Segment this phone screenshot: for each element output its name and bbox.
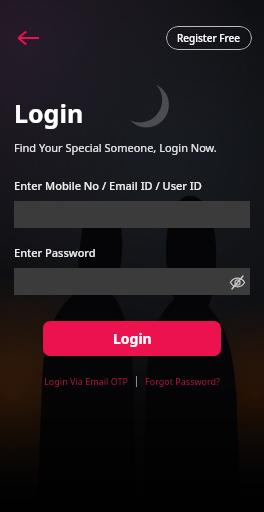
button[interactable]: Forgot Password?: [141, 373, 224, 389]
button[interactable]: Login: [43, 321, 221, 356]
staticText: Register Free: [177, 31, 241, 45]
staticText: Find Your Special Someone, Login Now.: [14, 140, 217, 155]
button[interactable]: Back: [12, 22, 44, 54]
staticText: Enter Password: [14, 245, 96, 260]
staticText: Login: [14, 96, 84, 130]
staticText: Login Via Email OTP: [44, 375, 128, 387]
button[interactable]: Show password: [224, 269, 250, 295]
staticText: Forgot Password?: [145, 375, 220, 387]
staticText: Enter Mobile No / Email ID / User ID: [14, 178, 202, 193]
button[interactable]: Register Free: [166, 26, 252, 50]
button[interactable]: Show password: [14, 268, 250, 295]
staticText: Login: [113, 329, 152, 348]
button[interactable]: Login Via Email OTP: [40, 373, 132, 389]
